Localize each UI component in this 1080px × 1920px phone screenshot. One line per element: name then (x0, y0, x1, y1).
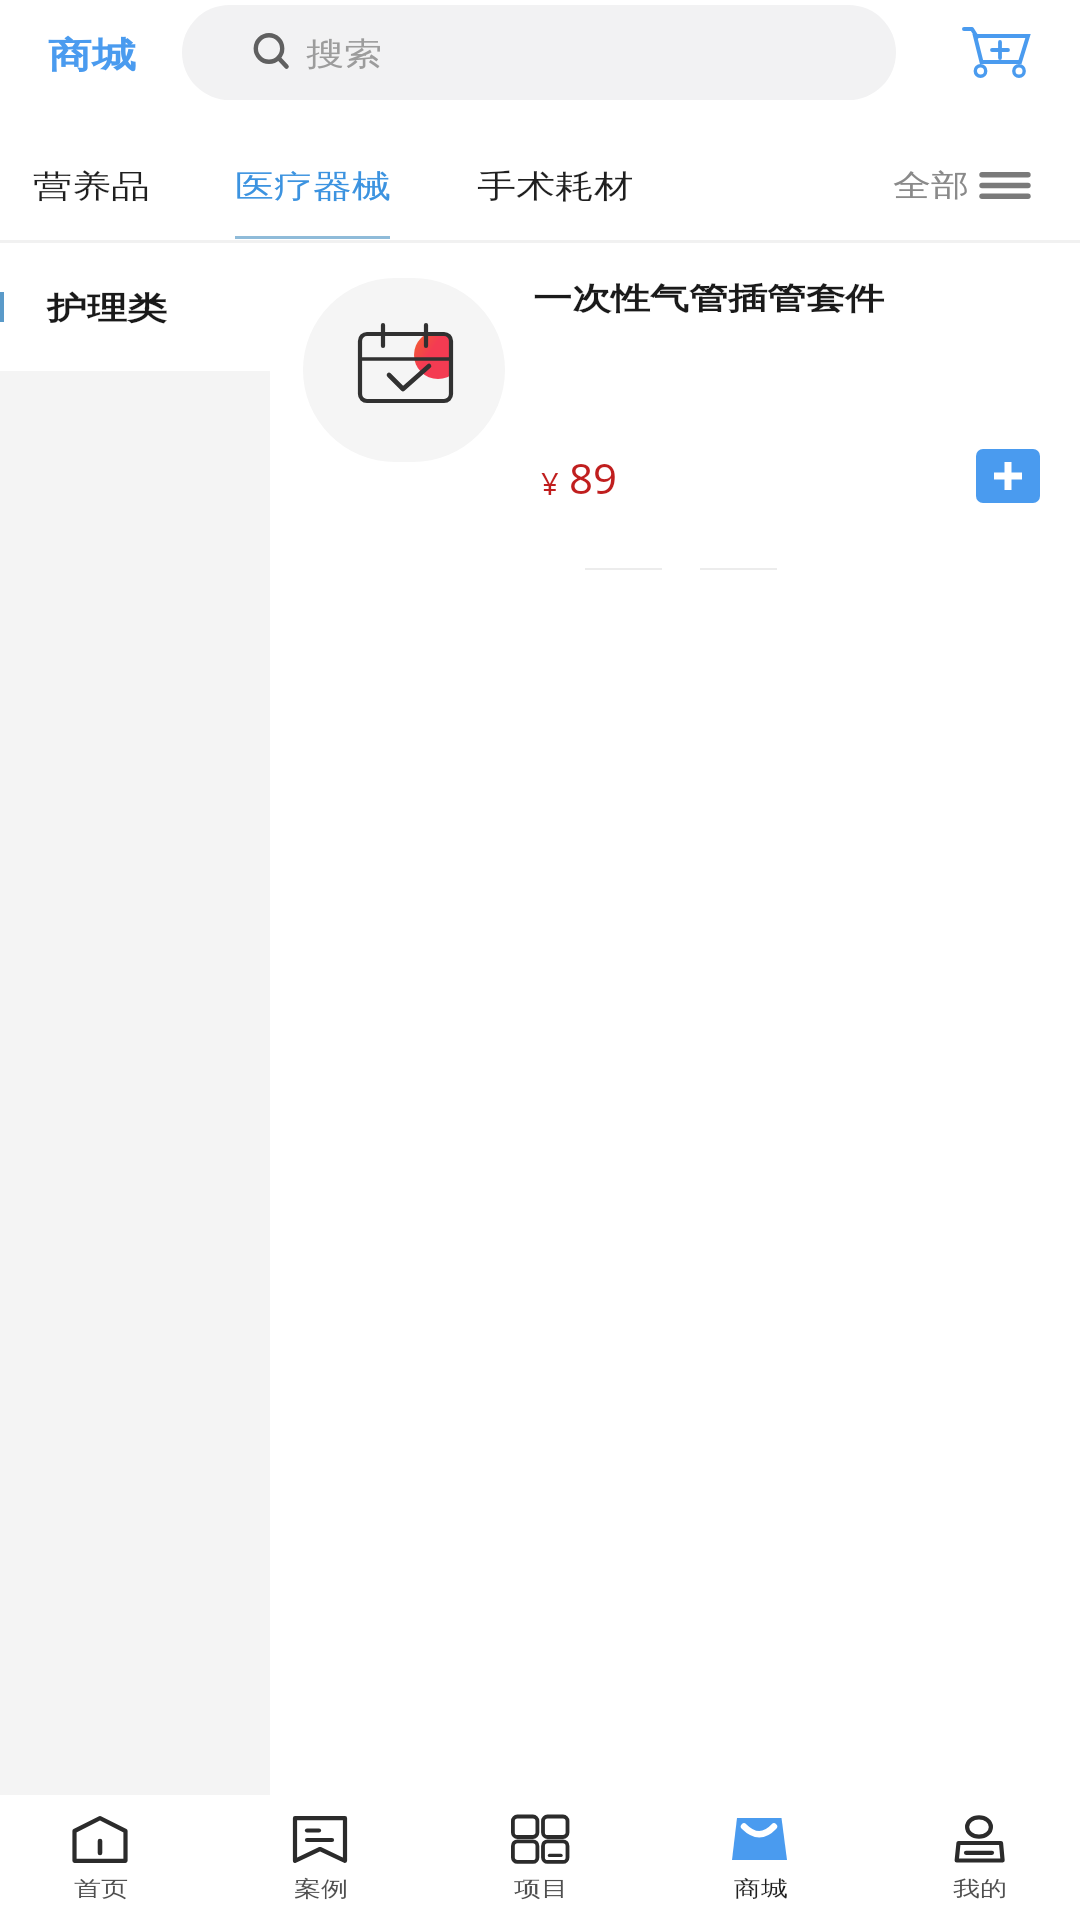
staticText: 项目 (514, 1875, 568, 1902)
button[interactable]: 案例 (215, 1795, 425, 1920)
staticText: 护理类 (47, 289, 167, 328)
button[interactable]: Add to cart (976, 449, 1040, 503)
staticText: 商城 (734, 1875, 788, 1902)
button[interactable]: 我的 (874, 1795, 1080, 1920)
staticText: 首页 (74, 1875, 128, 1902)
button[interactable]: 商城 (30, 18, 154, 88)
button[interactable]: 护理类 (0, 243, 270, 371)
button[interactable]: 商城 (655, 1795, 865, 1920)
staticText: 搜索 (306, 34, 382, 74)
button[interactable]: 医疗器械 (195, 105, 430, 240)
button[interactable]: 一次性气管插管套件 (270, 243, 1080, 583)
staticText: 手术耗材 (477, 166, 633, 206)
staticText: ¥ (541, 462, 559, 504)
button[interactable]: Shopping cart (946, 6, 1048, 100)
staticText: 89 (569, 449, 618, 506)
staticText: 医疗器械 (235, 166, 391, 206)
button[interactable]: 营养品 (0, 105, 187, 240)
staticText: 商城 (48, 33, 136, 77)
button[interactable]: 全部 (858, 105, 1080, 240)
staticText: 营养品 (33, 166, 150, 206)
staticText: 一次性气管插管套件 (533, 279, 884, 317)
staticText: 案例 (294, 1875, 348, 1902)
button[interactable]: 项目 (435, 1795, 645, 1920)
button[interactable]: 手术耗材 (437, 105, 670, 240)
button[interactable]: 搜索 (182, 5, 896, 100)
staticText: 全部 (893, 166, 969, 205)
staticText: 我的 (953, 1875, 1007, 1902)
button[interactable]: 首页 (0, 1795, 205, 1920)
